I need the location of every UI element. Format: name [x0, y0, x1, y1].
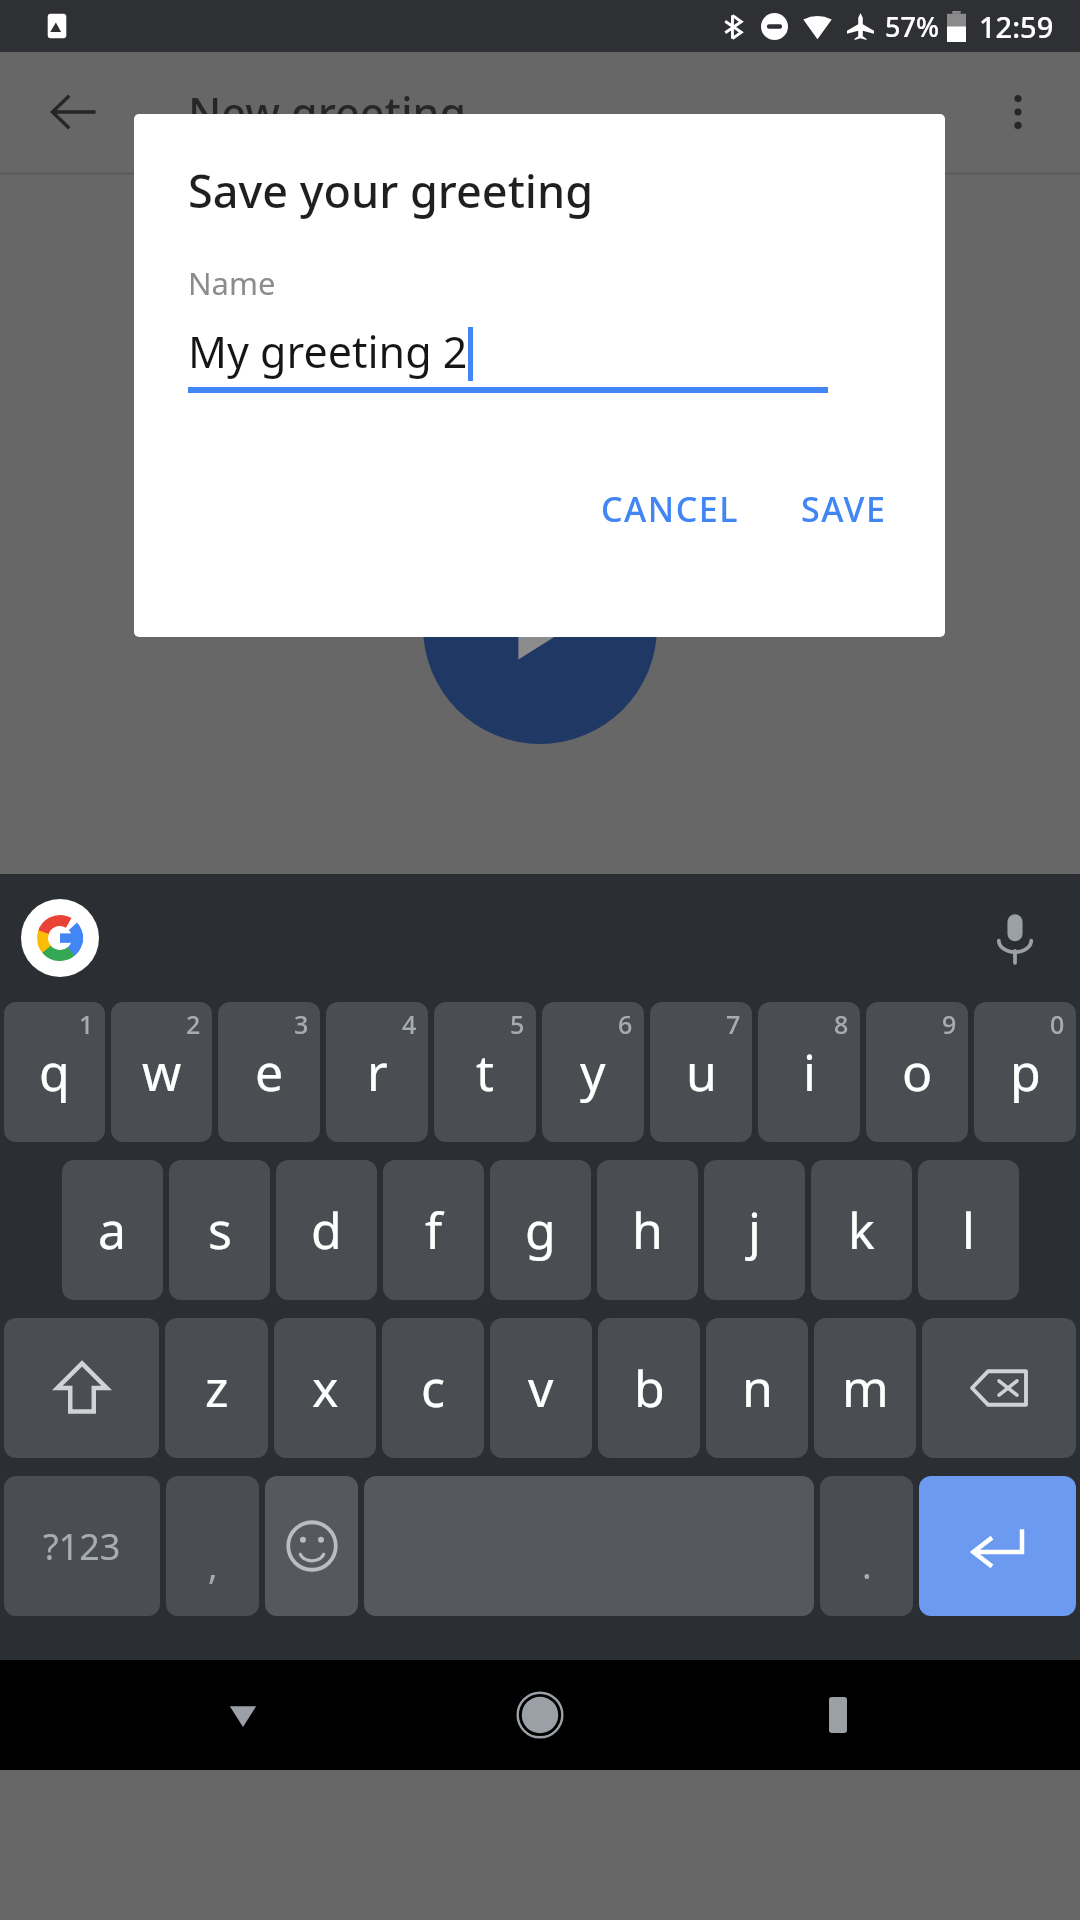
button[interactable]: f [383, 1160, 484, 1300]
button[interactable]: CANCEL [579, 468, 761, 550]
button[interactable]: p [974, 1002, 1076, 1142]
button[interactable]: h [597, 1160, 698, 1300]
button[interactable]: More options [970, 64, 1066, 160]
staticText: 0 [1050, 1007, 1065, 1041]
button[interactable]: u [650, 1002, 752, 1142]
staticText: f [425, 1196, 443, 1264]
staticText: 9 [942, 1007, 957, 1041]
staticText: 3 [294, 1007, 309, 1041]
staticText: 4 [402, 1007, 417, 1041]
button[interactable]: x [274, 1318, 376, 1458]
staticText: p [1010, 1038, 1041, 1106]
button[interactable]: d [276, 1160, 377, 1300]
staticText: a [98, 1196, 127, 1264]
button[interactable]: s [169, 1160, 270, 1300]
staticText: s [208, 1196, 232, 1264]
button[interactable]: i [758, 1002, 860, 1142]
button[interactable]: w [111, 1002, 212, 1142]
staticText: j [748, 1196, 761, 1264]
staticText: Save your greeting [188, 160, 594, 221]
button[interactable]: . [820, 1476, 913, 1616]
staticText: o [902, 1038, 933, 1106]
staticText: . [862, 1541, 872, 1590]
staticText: 8 [834, 1007, 849, 1041]
button[interactable]: Voice input [976, 899, 1054, 977]
staticText: New greeting [188, 83, 467, 142]
button[interactable]: r [326, 1002, 428, 1142]
staticText: e [255, 1038, 284, 1106]
button[interactable]: Emoji [265, 1476, 358, 1616]
button[interactable]: e [218, 1002, 320, 1142]
button[interactable]: k [811, 1160, 912, 1300]
button[interactable]: a [62, 1160, 163, 1300]
button[interactable]: Play [423, 510, 657, 744]
staticText: b [634, 1354, 665, 1422]
button[interactable]: Home [485, 1660, 595, 1770]
staticText: 7 [726, 1007, 741, 1041]
button[interactable]: v [490, 1318, 592, 1458]
button[interactable]: b [598, 1318, 700, 1458]
staticText: l [962, 1196, 975, 1264]
staticText: d [311, 1196, 342, 1264]
staticText: t [476, 1038, 495, 1106]
staticText: c [421, 1354, 445, 1422]
button[interactable]: Shift [4, 1318, 159, 1458]
button[interactable]: Google [20, 898, 100, 978]
staticText: k [848, 1196, 875, 1264]
staticText: My greeting 2 [188, 322, 468, 381]
button[interactable]: SAVE [779, 468, 909, 550]
button[interactable]: t [434, 1002, 536, 1142]
button[interactable]: Back [188, 1660, 298, 1770]
button[interactable]: z [165, 1318, 268, 1458]
staticText: 2 [186, 1007, 201, 1041]
staticText: z [205, 1354, 229, 1422]
button[interactable]: g [490, 1160, 591, 1300]
staticText: CANCEL [601, 486, 739, 532]
staticText: Name [188, 262, 276, 304]
button[interactable]: ?123 [4, 1476, 160, 1616]
staticText: ?123 [43, 1522, 121, 1571]
staticText: 12:59 [979, 7, 1054, 46]
staticText: i [803, 1038, 816, 1106]
staticText: q [39, 1038, 70, 1106]
staticText: g [525, 1196, 556, 1264]
button[interactable]: m [814, 1318, 916, 1458]
staticText: r [367, 1038, 388, 1106]
staticText: 6 [618, 1007, 633, 1041]
staticText: v [528, 1354, 554, 1422]
button[interactable]: o [866, 1002, 968, 1142]
button[interactable]: Navigate up [26, 64, 122, 160]
button[interactable]: q [4, 1002, 105, 1142]
staticText: SAVE [801, 486, 887, 532]
button[interactable]: j [704, 1160, 805, 1300]
staticText: x [312, 1354, 339, 1422]
staticText: 1 [79, 1007, 94, 1041]
button[interactable]: l [918, 1160, 1019, 1300]
button[interactable]: Enter [919, 1476, 1076, 1616]
staticText: u [686, 1038, 717, 1106]
staticText: 57% [885, 8, 939, 45]
button[interactable]: , [166, 1476, 259, 1616]
staticText: y [580, 1038, 606, 1106]
button[interactable]: y [542, 1002, 644, 1142]
staticText: w [142, 1038, 182, 1106]
staticText: 5 [510, 1007, 525, 1041]
button[interactable]: n [706, 1318, 808, 1458]
button[interactable]: c [382, 1318, 484, 1458]
staticText: h [632, 1196, 663, 1264]
button[interactable]: Backspace [922, 1318, 1076, 1458]
button[interactable]: Recent apps [783, 1660, 893, 1770]
staticText: n [742, 1354, 773, 1422]
staticText: m [842, 1354, 889, 1422]
staticText: , [208, 1541, 218, 1590]
